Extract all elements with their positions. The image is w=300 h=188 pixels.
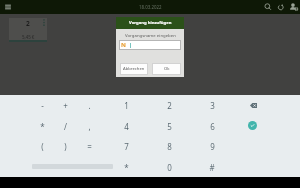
button[interactable]: 6 — [202, 117, 222, 135]
button[interactable]: Refresh — [274, 0, 287, 14]
button[interactable]: 2 — [159, 96, 179, 114]
staticText: * — [40, 121, 45, 132]
button[interactable]: 3 — [202, 96, 222, 114]
staticText: Ok — [164, 66, 170, 72]
button[interactable]: . — [79, 96, 99, 114]
staticText: 2 — [167, 100, 172, 111]
staticText: 7 — [124, 141, 129, 152]
button[interactable]: More options — [42, 19, 46, 26]
button[interactable]: 8 — [159, 137, 179, 155]
button[interactable]: Account — [287, 0, 300, 14]
button[interactable]: / — [55, 117, 75, 135]
staticText: - — [41, 100, 44, 111]
staticText: 5 — [167, 121, 172, 132]
button[interactable]: * — [116, 158, 136, 176]
button[interactable]: + — [55, 96, 75, 114]
button[interactable]: ( — [32, 137, 52, 155]
staticText: Vorgang hinzufügen — [129, 20, 172, 26]
staticText: , — [88, 121, 91, 132]
button[interactable]: Backspace — [247, 99, 259, 111]
staticText: . — [88, 100, 91, 111]
button[interactable]: , — [79, 117, 99, 135]
staticText: 18.03.2022 — [139, 4, 162, 10]
staticText: 0 — [167, 162, 172, 173]
button[interactable]: 2 — [9, 18, 47, 40]
staticText: ) — [64, 141, 67, 152]
button[interactable]: 5 — [159, 117, 179, 135]
button[interactable]: 4 — [116, 117, 136, 135]
staticText: 1 — [124, 100, 129, 111]
staticText: 8 — [167, 141, 172, 152]
button[interactable]: 0 — [159, 158, 179, 176]
staticText: * — [124, 162, 129, 173]
staticText: N — [121, 41, 126, 49]
button[interactable]: 7 — [116, 137, 136, 155]
button[interactable]: - — [32, 96, 52, 114]
staticText: # — [209, 162, 215, 173]
button[interactable]: 1 — [116, 96, 136, 114]
staticText: = — [87, 141, 92, 152]
staticText: / — [64, 121, 67, 132]
button[interactable]: # — [202, 158, 222, 176]
button[interactable]: Ok — [152, 63, 181, 75]
staticText: ( — [41, 141, 44, 152]
staticText: + — [63, 100, 68, 111]
staticText: Vorgangsname eingeben — [125, 32, 176, 38]
button[interactable]: 9 — [202, 137, 222, 155]
staticText: 9 — [210, 141, 215, 152]
button[interactable]: * — [32, 117, 52, 135]
staticText: 2 — [26, 19, 30, 28]
staticText: 4 — [124, 121, 129, 132]
staticText: 3 — [210, 100, 215, 111]
staticText: Abbrechen — [123, 66, 145, 72]
staticText: 6 — [210, 121, 215, 132]
staticText: 5,45 € — [22, 34, 35, 40]
button[interactable]: Menu — [2, 1, 14, 13]
button[interactable]: ) — [55, 137, 75, 155]
button[interactable]: Done — [248, 121, 257, 130]
button[interactable]: N — [119, 40, 181, 50]
button[interactable]: Abbrechen — [120, 63, 148, 75]
button[interactable]: = — [79, 137, 99, 155]
button[interactable]: Search — [261, 0, 274, 14]
